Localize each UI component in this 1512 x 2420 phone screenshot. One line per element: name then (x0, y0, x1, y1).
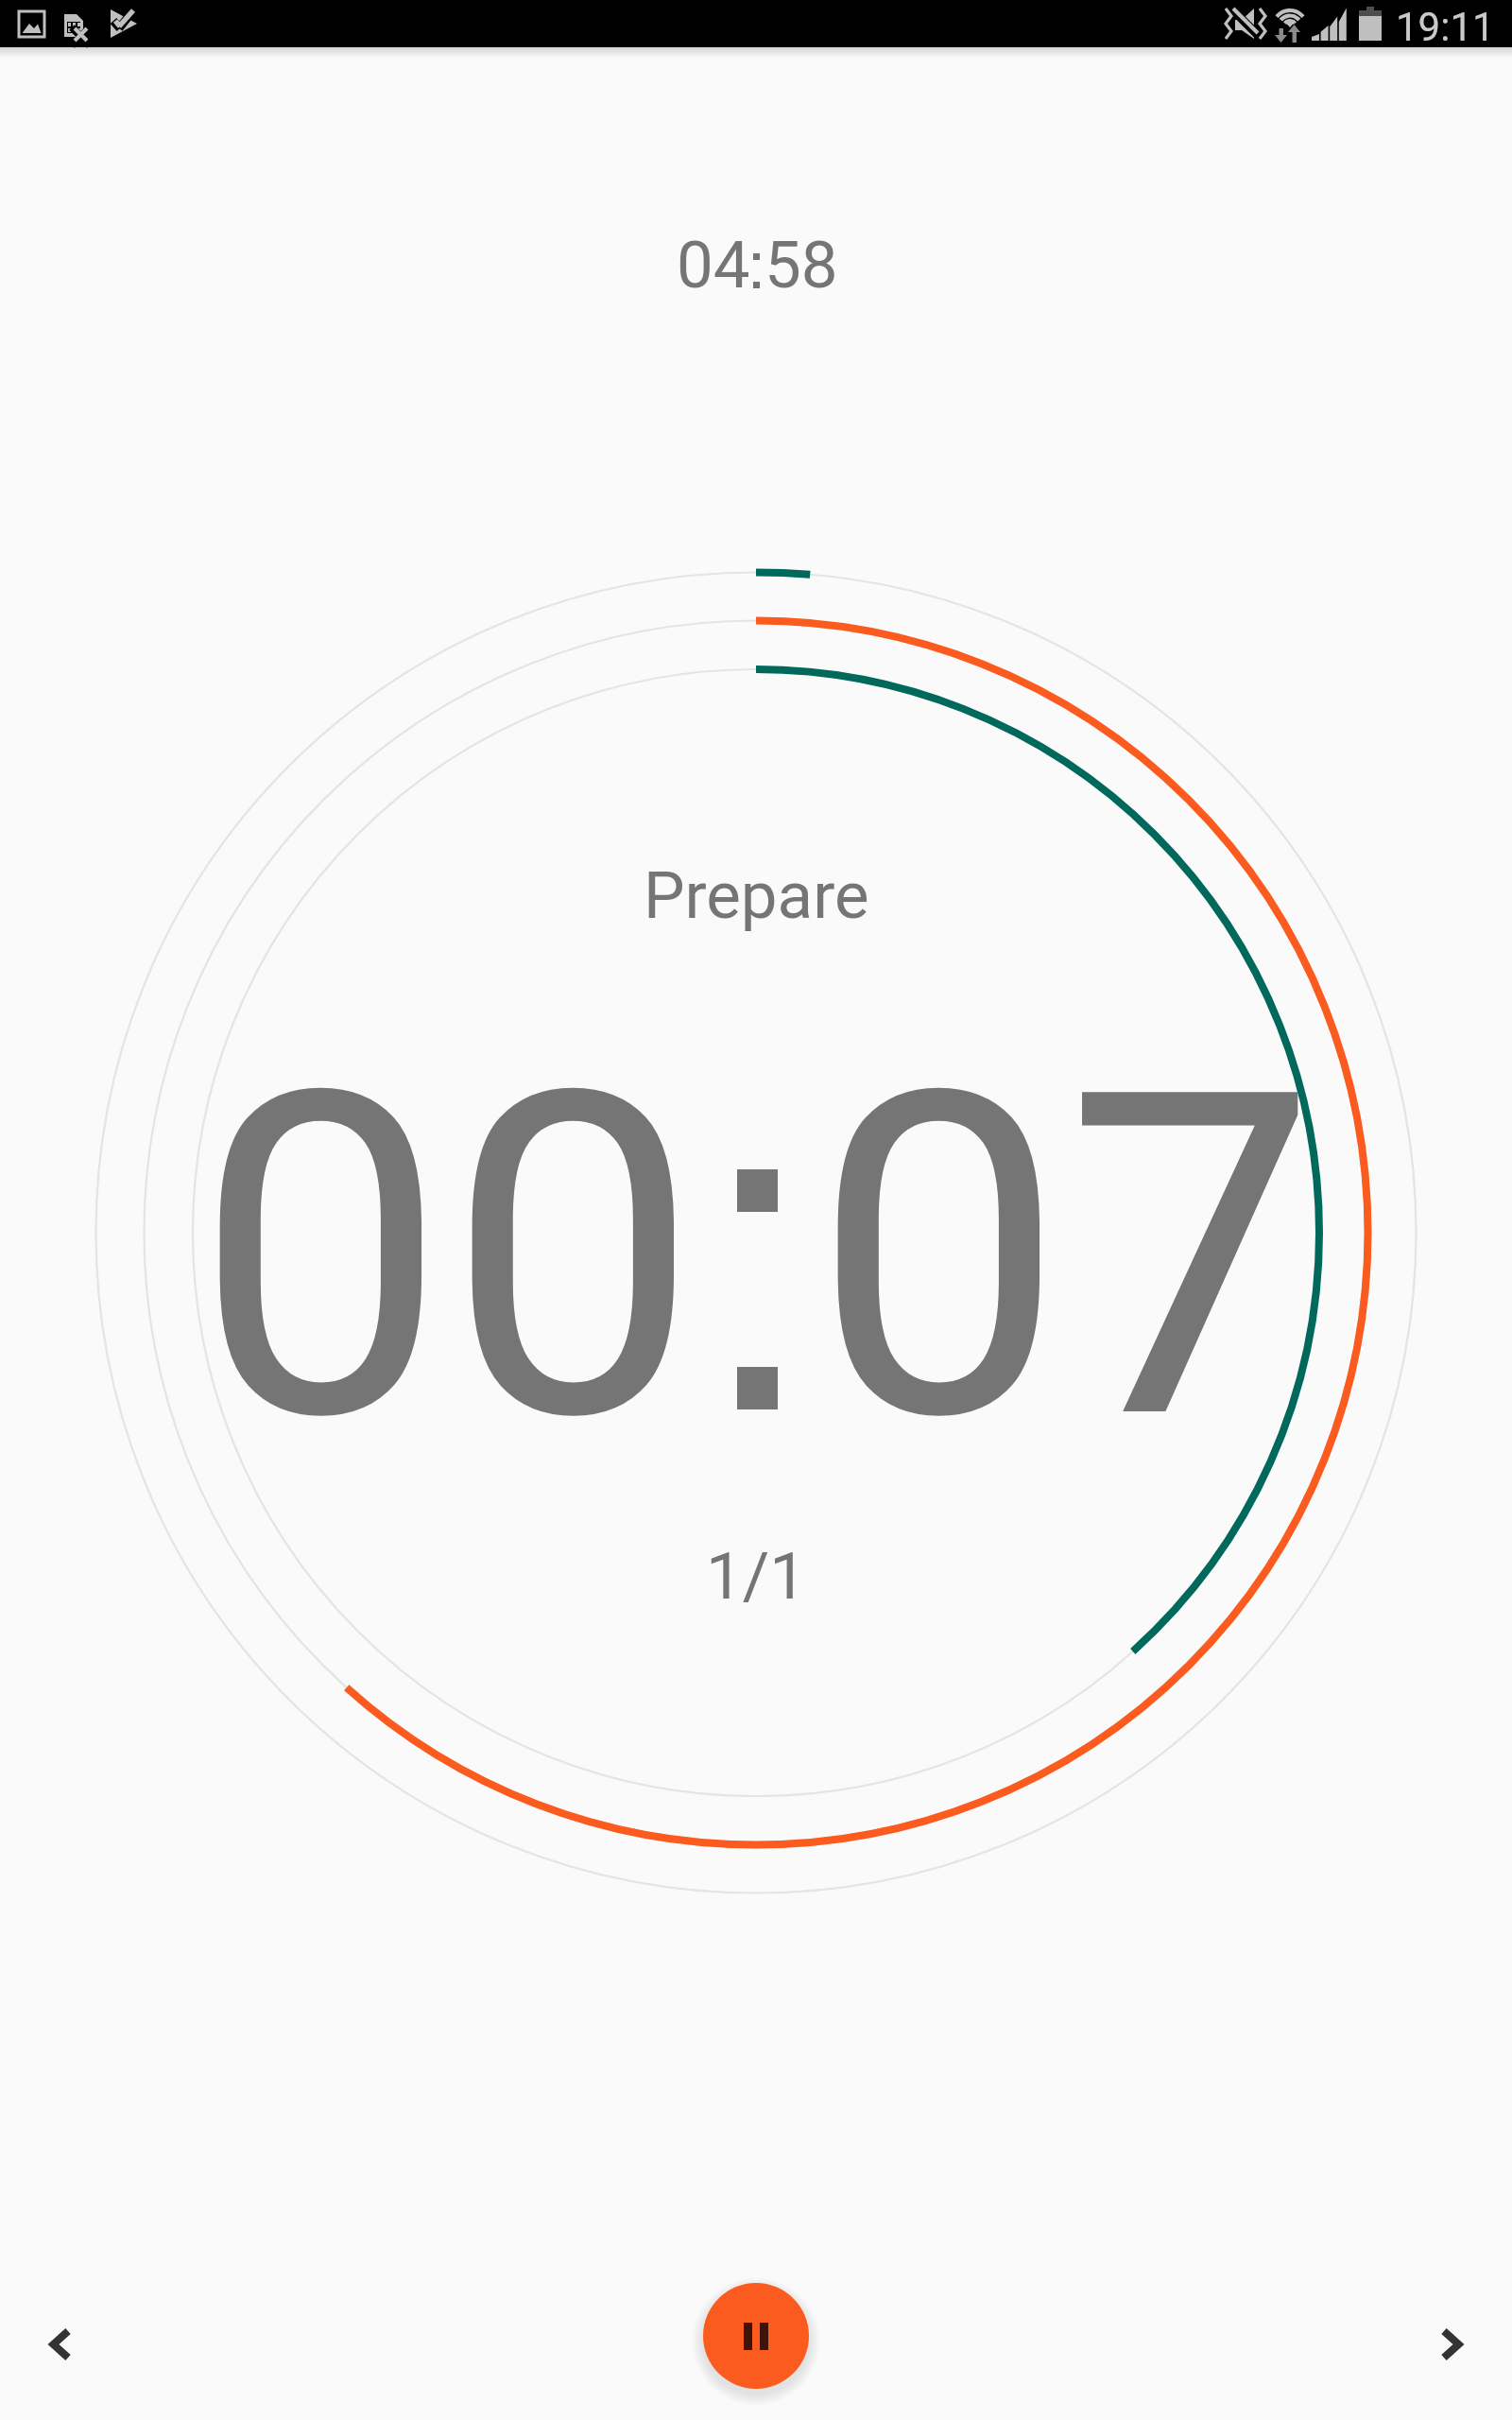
staticText: 19:11 (1396, 4, 1495, 50)
staticText: 04 (677, 227, 750, 303)
staticText: 07 (813, 994, 1317, 1521)
staticText: 58 (765, 227, 838, 303)
staticText: Prepare (644, 857, 869, 934)
button[interactable]: Previous (7, 2291, 112, 2397)
button[interactable]: Next (1400, 2291, 1505, 2397)
staticText: 1/1 (706, 1538, 807, 1615)
button[interactable]: Pause (703, 2283, 809, 2389)
staticText: 00 (195, 994, 699, 1521)
